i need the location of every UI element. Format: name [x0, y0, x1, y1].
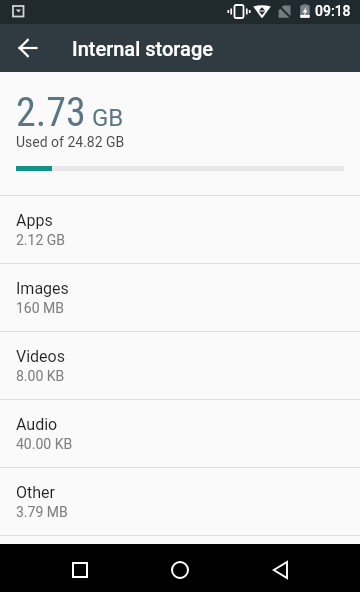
staticText: 3.79 MB: [16, 504, 68, 520]
button[interactable]: Audio: [0, 400, 360, 467]
staticText: 2.73: [16, 89, 86, 136]
button[interactable]: Other: [0, 468, 360, 535]
staticText: 8.00 KB: [16, 368, 65, 384]
staticText: Used of 24.82 GB: [16, 134, 125, 150]
button[interactable]: [150, 544, 210, 592]
staticText: 40.00 KB: [16, 436, 73, 452]
staticText: GB: [86, 104, 124, 132]
staticText: Audio: [16, 415, 58, 434]
staticText: Videos: [16, 347, 65, 366]
button[interactable]: Images: [0, 264, 360, 331]
staticText: 2.12 GB: [16, 232, 66, 248]
button[interactable]: [12, 32, 44, 64]
staticText: Internal storage: [72, 37, 213, 60]
staticText: Images: [16, 279, 69, 298]
button[interactable]: Apps: [0, 196, 360, 263]
staticText: 09:18: [315, 3, 351, 19]
button[interactable]: [50, 544, 110, 592]
staticText: Other: [16, 483, 55, 502]
staticText: Apps: [16, 211, 53, 230]
button[interactable]: [250, 544, 310, 592]
staticText: 160 MB: [16, 300, 65, 316]
button[interactable]: Videos: [0, 332, 360, 399]
